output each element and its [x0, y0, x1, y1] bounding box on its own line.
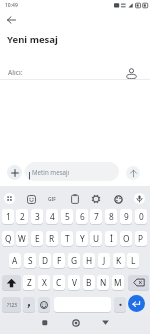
- staticText: V: [72, 277, 77, 288]
- button[interactable]: L: [127, 253, 139, 268]
- staticText: 5: [65, 211, 70, 222]
- button[interactable]: [128, 295, 145, 312]
- button[interactable]: G: [68, 253, 80, 268]
- staticText: 1: [6, 211, 11, 222]
- button[interactable]: C: [53, 275, 65, 290]
- button[interactable]: İ: [105, 231, 117, 246]
- button[interactable]: 4: [46, 209, 58, 224]
- button[interactable]: [4, 193, 15, 204]
- button[interactable]: U: [90, 231, 102, 246]
- button[interactable]: [126, 166, 140, 180]
- staticText: 2: [20, 211, 25, 222]
- staticText: 7: [94, 211, 99, 222]
- staticText: U: [93, 233, 100, 244]
- staticText: P: [138, 233, 144, 244]
- button[interactable]: [134, 193, 145, 204]
- button[interactable]: B: [83, 275, 95, 290]
- staticText: X: [42, 277, 47, 288]
- staticText: GIF: [48, 196, 56, 203]
- button[interactable]: 0: [135, 209, 147, 224]
- button[interactable]: [23, 191, 39, 207]
- button[interactable]: [88, 191, 104, 207]
- staticText: Yeni mesaj: [7, 33, 58, 46]
- staticText: İ: [110, 233, 113, 244]
- staticText: K: [116, 255, 122, 266]
- button[interactable]: E: [31, 231, 43, 246]
- button[interactable]: ?123: [2, 297, 21, 312]
- button[interactable]: 2: [16, 209, 28, 224]
- button[interactable]: T: [61, 231, 73, 246]
- staticText: G: [71, 255, 78, 266]
- button[interactable]: 8: [105, 209, 117, 224]
- button[interactable]: [23, 297, 35, 312]
- button[interactable]: Z: [23, 275, 35, 290]
- button[interactable]: 5: [61, 209, 73, 224]
- button[interactable]: [110, 191, 126, 207]
- button[interactable]: [38, 297, 50, 312]
- button[interactable]: [7, 165, 22, 180]
- staticText: 0: [139, 211, 144, 222]
- button[interactable]: N: [97, 275, 109, 290]
- staticText: B: [86, 277, 92, 288]
- button[interactable]: GIF: [44, 191, 60, 207]
- button[interactable]: [67, 191, 83, 207]
- staticText: A: [12, 255, 18, 266]
- staticText: H: [86, 255, 93, 266]
- button[interactable]: [128, 275, 149, 290]
- staticText: T: [65, 233, 70, 244]
- button[interactable]: [4, 13, 19, 27]
- button[interactable]: F: [53, 253, 65, 268]
- button[interactable]: 9: [120, 209, 132, 224]
- button[interactable]: [114, 297, 126, 312]
- button[interactable]: J: [98, 253, 110, 268]
- staticText: Alıcı:: [8, 68, 23, 77]
- staticText: Q: [5, 233, 12, 244]
- staticText: 9: [124, 211, 129, 222]
- button[interactable]: M: [112, 275, 124, 290]
- staticText: S: [28, 255, 33, 266]
- staticText: R: [49, 233, 55, 244]
- staticText: L: [131, 255, 136, 266]
- staticText: O: [123, 233, 130, 244]
- staticText: Y: [80, 233, 85, 244]
- button[interactable]: Q: [2, 231, 14, 246]
- staticText: 4: [50, 211, 55, 222]
- button[interactable]: [37, 315, 52, 330]
- button[interactable]: 1: [2, 209, 14, 224]
- staticText: 10:49: [5, 2, 18, 9]
- button[interactable]: 7: [90, 209, 102, 224]
- button[interactable]: W: [16, 231, 28, 246]
- staticText: J: [103, 255, 106, 266]
- staticText: E: [35, 233, 40, 244]
- button[interactable]: K: [113, 253, 125, 268]
- staticText: 6: [80, 211, 85, 222]
- staticText: ?123: [7, 302, 17, 308]
- button[interactable]: A: [9, 253, 21, 268]
- button[interactable]: V: [68, 275, 80, 290]
- button[interactable]: X: [38, 275, 50, 290]
- button[interactable]: [2, 275, 21, 290]
- button[interactable]: R: [46, 231, 58, 246]
- button[interactable]: S: [24, 253, 36, 268]
- staticText: F: [57, 255, 62, 266]
- button[interactable]: 6: [76, 209, 88, 224]
- staticText: 3: [35, 211, 40, 222]
- staticText: Metin mesajı: [32, 168, 70, 176]
- button[interactable]: O: [120, 231, 132, 246]
- button[interactable]: [68, 315, 83, 330]
- button[interactable]: H: [83, 253, 95, 268]
- button[interactable]: D: [39, 253, 51, 268]
- button[interactable]: [98, 315, 113, 330]
- staticText: 8: [109, 211, 114, 222]
- button[interactable]: P: [135, 231, 147, 246]
- staticText: Z: [27, 277, 32, 288]
- staticText: M: [114, 277, 122, 288]
- button[interactable]: Y: [76, 231, 88, 246]
- staticText: D: [42, 255, 49, 266]
- button[interactable]: 3: [31, 209, 43, 224]
- button[interactable]: [123, 65, 140, 82]
- button[interactable]: Metin mesajı: [25, 162, 119, 181]
- staticText: C: [56, 277, 62, 288]
- staticText: N: [100, 277, 107, 288]
